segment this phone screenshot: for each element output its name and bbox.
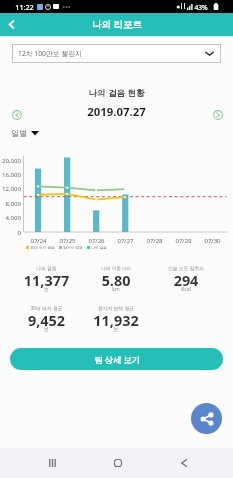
staticText: 07/30 <box>198 236 227 244</box>
button[interactable]: Previous day <box>9 107 24 122</box>
button[interactable]: Next day <box>210 107 225 122</box>
staticText: 4,000 <box>0 213 21 221</box>
staticText: 294 <box>151 271 221 291</box>
button[interactable]: 팀 상세 보기 <box>10 348 223 370</box>
staticText: 30대 여자 평균 <box>30 245 55 250</box>
button[interactable]: Share <box>191 403 222 434</box>
staticText: 나의 걸음 <box>91 245 107 250</box>
staticText: 11:22 <box>15 2 34 12</box>
button[interactable]: Home <box>106 448 129 478</box>
staticText: 12,000 <box>0 184 21 192</box>
staticText: 5.80 <box>81 271 151 291</box>
staticText: 팀 상세 보기 <box>94 354 140 365</box>
button[interactable]: 12차 100만보 챌린지 <box>12 44 221 63</box>
staticText: 오늘 소모 칼로리 <box>151 265 221 272</box>
staticText: 보 <box>81 326 151 332</box>
staticText: 07/25 <box>53 236 82 244</box>
staticText: 07/26 <box>82 236 111 244</box>
staticText: 07/27 <box>111 236 140 244</box>
staticText: 참가자 전체 평균 <box>81 305 151 312</box>
staticText: 보 <box>12 326 81 332</box>
staticText: 12차 100만보 챌린지 <box>18 49 82 58</box>
staticText: Kcal <box>151 286 221 293</box>
staticText: 나의 걸음 <box>12 265 81 272</box>
staticText: km <box>81 286 151 293</box>
staticText: 07/29 <box>169 236 198 244</box>
staticText: 나의 이동거리 <box>81 265 151 272</box>
staticText: 보 <box>12 286 81 292</box>
staticText: 8,000 <box>0 199 21 207</box>
staticText: 20,000 <box>0 156 21 164</box>
staticText: 2019.07.27 <box>87 104 146 120</box>
staticText: 43% <box>194 3 208 12</box>
staticText: 11,377 <box>12 271 81 291</box>
button[interactable]: Back <box>0 13 23 36</box>
staticText: 07/28 <box>140 236 169 244</box>
staticText: 9,452 <box>12 311 81 331</box>
staticText: 나의 리포트 <box>92 18 142 31</box>
staticText: 0 <box>0 228 21 236</box>
staticText: 30대 여자 평균 <box>12 305 81 312</box>
button[interactable]: 일별 <box>11 128 39 138</box>
staticText: 참가자 평균 <box>63 245 83 250</box>
staticText: 나의 걸음 현황 <box>0 87 233 99</box>
staticText: 11,932 <box>81 311 151 331</box>
staticText: 07/24 <box>24 236 53 244</box>
staticText: 16,000 <box>0 170 21 178</box>
staticText: 일별 <box>11 128 27 138</box>
button[interactable]: Back <box>172 448 195 478</box>
button[interactable]: Recents <box>41 448 64 478</box>
